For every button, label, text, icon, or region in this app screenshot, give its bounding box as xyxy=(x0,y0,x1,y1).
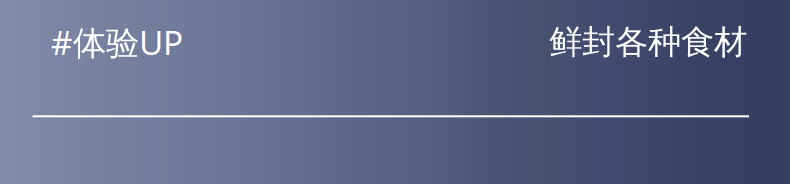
button[interactable]: #体验UP xyxy=(51,20,183,64)
staticText: #体验UP xyxy=(51,20,183,64)
button[interactable]: 鲜封各种食材 xyxy=(549,22,747,63)
staticText: 鲜封各种食材 xyxy=(549,22,747,63)
